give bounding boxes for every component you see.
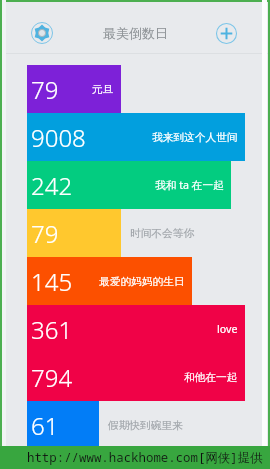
- button[interactable]: Add: [204, 13, 248, 53]
- staticText: 最美倒数日: [103, 25, 168, 41]
- button[interactable]: 794: [2, 353, 268, 401]
- staticText: 61: [31, 409, 59, 442]
- staticText: 我和 ta 在一起: [155, 178, 224, 193]
- button[interactable]: 9008: [2, 113, 268, 161]
- staticText: 时间不会等你: [130, 227, 195, 240]
- staticText: 361: [31, 313, 73, 346]
- button[interactable]: 79: [2, 65, 268, 113]
- staticText: 79: [31, 73, 59, 106]
- button[interactable]: 79: [2, 209, 268, 257]
- staticText: 元旦: [92, 83, 114, 96]
- staticText: 242: [31, 169, 73, 202]
- button[interactable]: 145: [2, 257, 268, 305]
- staticText: 最爱的妈妈的生日: [99, 275, 185, 288]
- staticText: 假期快到碗里来: [108, 419, 183, 432]
- button[interactable]: 361: [2, 305, 268, 353]
- staticText: 79: [31, 217, 59, 250]
- staticText: 9008: [31, 121, 86, 154]
- button[interactable]: Settings: [20, 13, 64, 53]
- staticText: 145: [31, 265, 73, 298]
- staticText: 794: [31, 361, 73, 394]
- staticText: love: [217, 322, 238, 337]
- button[interactable]: 61: [2, 401, 268, 449]
- staticText: 和他在一起: [184, 371, 238, 384]
- staticText: 我来到这个人世间: [152, 131, 238, 144]
- button[interactable]: 242: [2, 161, 268, 209]
- staticText: http://www.hackhome.com[网侠]提供: [27, 449, 263, 466]
